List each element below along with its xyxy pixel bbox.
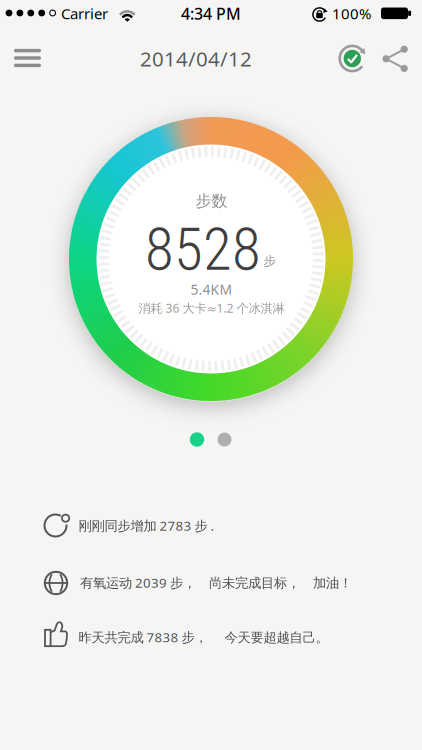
staticText: 5.4KM bbox=[190, 280, 232, 299]
staticText: 有氧运动 2039 步， 尚未完成目标， 加油！ bbox=[80, 573, 352, 591]
staticText: 4:34 PM bbox=[181, 3, 241, 24]
staticText: 昨天共完成 7838 步， 今天要超越自己。 bbox=[78, 628, 328, 646]
staticText: 步数 bbox=[195, 191, 227, 211]
button[interactable] bbox=[5, 38, 49, 78]
staticText: 2014/04/12 bbox=[140, 44, 252, 72]
staticText: 消耗 36 大卡≈1.2 个冰淇淋 bbox=[138, 300, 284, 316]
staticText: 步 bbox=[263, 253, 276, 269]
staticText: 100% bbox=[332, 3, 371, 24]
button[interactable] bbox=[332, 38, 372, 78]
staticText: 刚刚同步增加 2783 步 . bbox=[78, 516, 214, 534]
button[interactable] bbox=[376, 38, 414, 78]
staticText: 8528 bbox=[145, 215, 261, 284]
staticText: Carrier bbox=[61, 3, 108, 24]
